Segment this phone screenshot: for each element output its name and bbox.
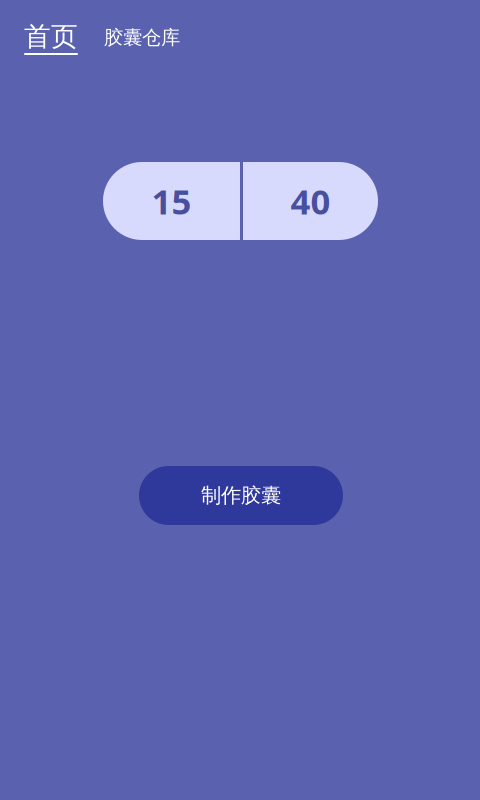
staticText: 首页 (24, 20, 78, 53)
button[interactable]: 首页 (24, 24, 78, 55)
staticText: 15 (151, 178, 191, 224)
staticText: 胶囊仓库 (104, 25, 180, 50)
button[interactable]: 胶囊仓库 (104, 26, 180, 49)
button[interactable]: 制作胶囊 (139, 466, 343, 525)
staticText: 40 (290, 178, 330, 224)
staticText: 制作胶囊 (201, 483, 281, 508)
